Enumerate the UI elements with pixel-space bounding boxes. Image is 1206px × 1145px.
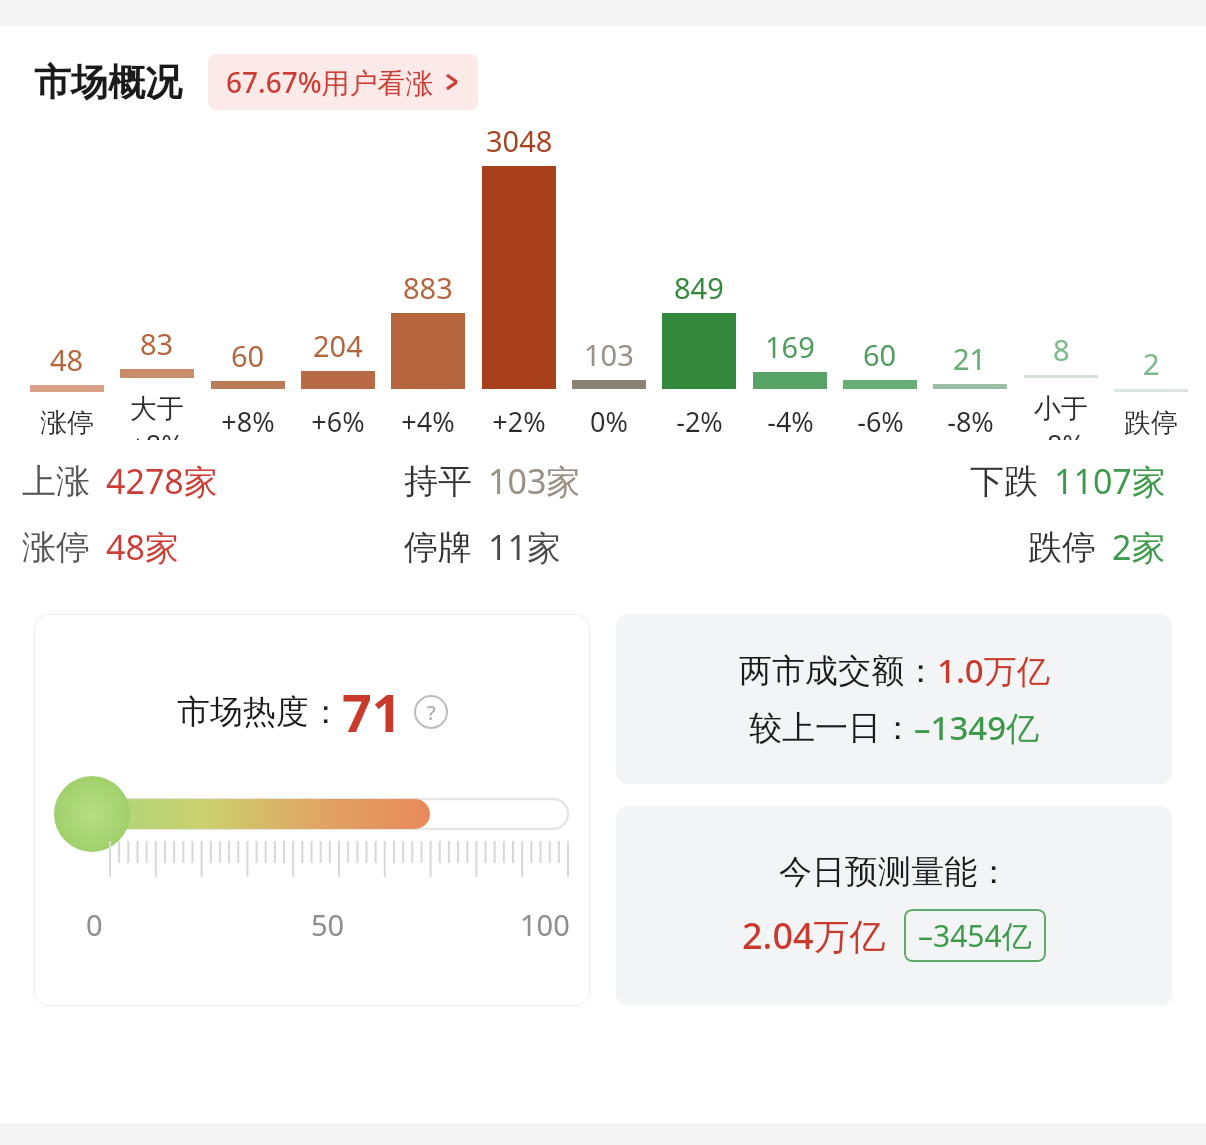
staticText: +2%: [492, 403, 546, 440]
staticText: 停牌: [404, 526, 472, 569]
staticText: 60: [863, 335, 897, 374]
staticText: 两市成交额：: [739, 650, 937, 692]
staticText: 跌停: [1124, 406, 1178, 440]
staticText: 市场概况: [34, 59, 182, 106]
staticText: +8%: [130, 426, 184, 440]
staticText: +8%: [221, 403, 275, 440]
staticText: 跌停: [1028, 526, 1096, 569]
staticText: -6%: [857, 403, 904, 440]
staticText: +4%: [401, 403, 455, 440]
staticText: 2.04万亿: [742, 911, 886, 960]
staticText: 3048: [486, 121, 553, 160]
staticText: 8: [1053, 330, 1070, 369]
staticText: 11家: [488, 524, 561, 570]
staticText: -4%: [767, 403, 814, 440]
staticText: 71: [342, 676, 402, 747]
staticText: 1107家: [1054, 458, 1166, 504]
staticText: -2%: [676, 403, 723, 440]
staticText: 涨停: [22, 526, 90, 569]
staticText: 2: [1143, 344, 1160, 383]
staticText: 48: [50, 340, 84, 379]
staticText: 今日预测量能：: [779, 851, 1010, 893]
staticText: –3454亿: [918, 915, 1032, 956]
staticText: 涨停: [40, 406, 94, 440]
staticText: ?: [427, 699, 436, 726]
staticText: 103家: [488, 458, 581, 504]
button[interactable]: 市场热度：: [34, 614, 590, 1006]
staticText: 小于: [1034, 392, 1088, 426]
staticText: 48家: [106, 524, 179, 570]
staticText: 上涨: [22, 460, 90, 503]
staticText: 2家: [1112, 524, 1166, 570]
staticText: 大于: [130, 392, 184, 426]
staticText: 204: [313, 326, 363, 365]
staticText: -8%: [947, 403, 994, 440]
staticText: 169: [765, 327, 815, 366]
staticText: 849: [674, 268, 724, 307]
staticText: +6%: [311, 403, 365, 440]
staticText: 103: [584, 335, 634, 374]
button[interactable]: 67.67%用户看涨: [208, 54, 478, 110]
button[interactable]: 两市成交额：: [616, 614, 1172, 784]
staticText: 1.0万亿: [937, 648, 1050, 693]
button[interactable]: 今日预测量能：: [616, 806, 1172, 1006]
staticText: 100: [520, 905, 570, 944]
staticText: –1349亿: [914, 705, 1040, 750]
staticText: 60: [231, 336, 265, 375]
staticText: 0%: [590, 403, 628, 440]
staticText: 83: [140, 324, 174, 363]
staticText: 883: [403, 268, 453, 307]
staticText: 下跌: [970, 460, 1038, 503]
staticText: 67.67%用户看涨: [226, 63, 434, 101]
staticText: 市场热度：: [177, 691, 342, 733]
staticText: 4278家: [106, 458, 218, 504]
staticText: 0: [86, 905, 103, 944]
staticText: 50: [311, 905, 345, 944]
button[interactable]: 帮助: [414, 695, 448, 729]
staticText: 21: [953, 339, 987, 378]
staticText: 较上一日：: [749, 707, 914, 749]
staticText: 持平: [404, 460, 472, 503]
staticText: -8%: [1038, 426, 1085, 440]
